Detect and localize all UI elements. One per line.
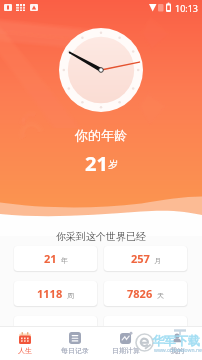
staticText: 月: [154, 256, 161, 265]
staticText: 每日记录: [61, 346, 89, 355]
button[interactable]: 257: [104, 246, 187, 271]
button[interactable]: 人生: [0, 327, 50, 360]
staticText: 我的: [170, 346, 184, 355]
staticText: 21: [44, 251, 57, 266]
staticText: 21: [85, 150, 108, 177]
button[interactable]: 每日记录: [50, 327, 100, 360]
staticText: 年: [61, 256, 68, 265]
staticText: www.onlinedown.net: [154, 347, 202, 354]
staticText: 人生: [18, 346, 32, 355]
staticText: 你的年龄: [75, 127, 127, 143]
staticText: 10:13: [175, 2, 199, 14]
button[interactable]: 7826: [104, 281, 187, 306]
staticText: 周: [67, 291, 74, 300]
staticText: 你采到这个世界已经: [56, 230, 146, 243]
staticText: 华军下载: [152, 333, 200, 348]
button[interactable]: [14, 316, 97, 341]
button[interactable]: [104, 316, 187, 341]
staticText: 1118: [37, 286, 63, 301]
staticText: 天: [157, 291, 164, 300]
button[interactable]: 21: [14, 246, 97, 271]
staticText: 257: [131, 251, 150, 266]
staticText: 岁: [108, 158, 118, 171]
button[interactable]: 1118: [14, 281, 97, 306]
button[interactable]: 我的: [151, 327, 202, 360]
staticText: 日期计算: [112, 346, 140, 355]
button[interactable]: 日期计算: [100, 327, 151, 360]
staticText: 7826: [127, 286, 153, 301]
